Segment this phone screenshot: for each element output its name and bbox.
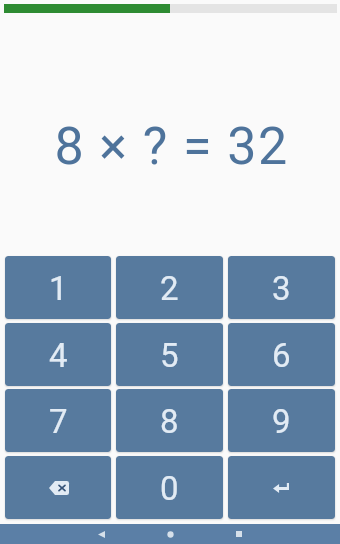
staticText: 6 (272, 336, 291, 375)
staticText: 1 (49, 269, 68, 308)
button[interactable]: Recents (229, 524, 249, 544)
staticText: 0 (160, 469, 179, 508)
button[interactable]: 7 (5, 389, 111, 452)
button[interactable]: 9 (228, 389, 335, 452)
button[interactable]: Back (91, 524, 111, 544)
staticText: 7 (49, 402, 68, 441)
other: Backspace (49, 481, 69, 495)
button[interactable]: 0 (116, 456, 223, 519)
button[interactable]: 6 (228, 323, 335, 386)
button[interactable]: 2 (116, 256, 223, 319)
button[interactable]: 4 (5, 323, 111, 386)
button[interactable]: 8 (116, 389, 223, 452)
staticText: 3 (272, 269, 291, 308)
button[interactable]: Home (160, 524, 180, 544)
button[interactable]: Backspace (5, 456, 111, 519)
staticText: 8 (160, 402, 179, 441)
staticText: 9 (272, 402, 291, 441)
button[interactable]: 3 (228, 256, 335, 319)
other: Back (98, 531, 105, 538)
staticText: 5 (160, 336, 179, 375)
staticText: 8 × ? = 32 (54, 116, 289, 177)
button[interactable]: Enter (228, 456, 335, 519)
staticText: 2 (160, 269, 179, 308)
staticText: 4 (49, 336, 68, 375)
button[interactable]: 1 (5, 256, 111, 319)
other: Enter (273, 484, 289, 493)
other: Home (167, 531, 174, 538)
button[interactable]: 5 (116, 323, 223, 386)
